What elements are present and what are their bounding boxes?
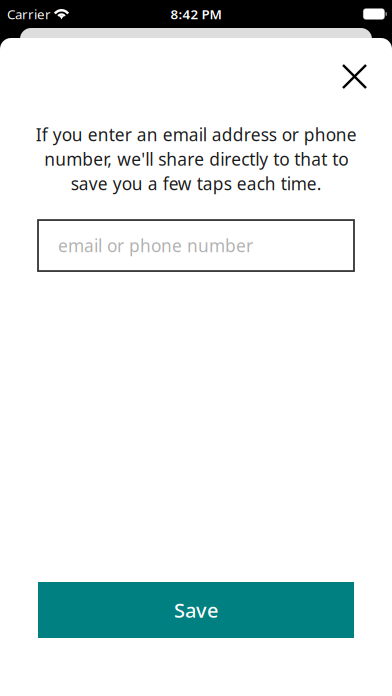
button[interactable]: email or phone number	[38, 220, 354, 271]
staticText: If you enter an email address or phone n…	[35, 123, 356, 195]
button[interactable]: Save	[38, 582, 354, 638]
staticText: 8:42 PM	[170, 5, 221, 23]
staticText: email or phone number	[58, 234, 253, 257]
staticText: Save	[174, 597, 218, 623]
staticText: Carrier	[7, 5, 51, 23]
button[interactable]: Close	[334, 56, 375, 97]
